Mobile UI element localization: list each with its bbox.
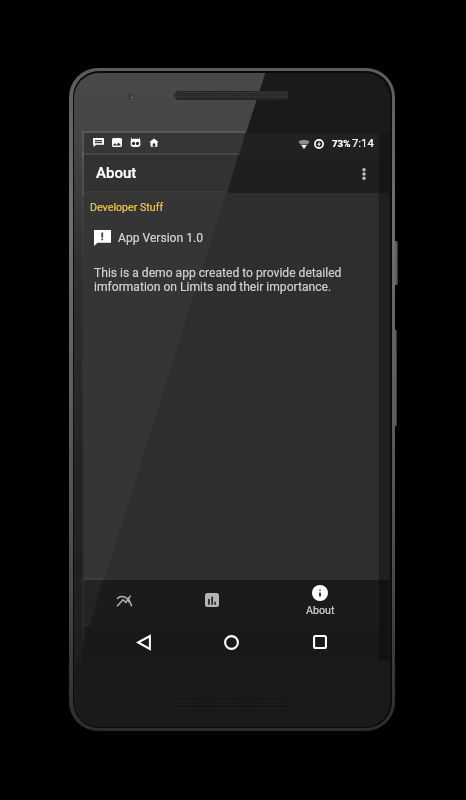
button[interactable]: About <box>286 580 389 626</box>
staticText: About <box>96 164 137 182</box>
button[interactable]: Recent apps <box>269 626 389 661</box>
staticText: About <box>306 604 335 617</box>
staticText: App Version 1.0 <box>118 231 203 245</box>
staticText: Developer Stuff <box>90 201 164 214</box>
button[interactable]: Home <box>204 626 269 661</box>
button[interactable]: Statistics <box>185 580 286 626</box>
staticText: 73% <box>332 138 351 149</box>
button[interactable]: More options <box>351 161 377 187</box>
button[interactable]: Trends <box>84 580 185 626</box>
staticText: This is a demo app created to provide de… <box>94 266 394 294</box>
staticText: 7:14 <box>352 137 374 150</box>
button[interactable]: Back <box>84 626 204 661</box>
